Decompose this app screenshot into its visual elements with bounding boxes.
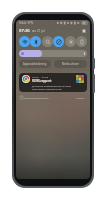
staticText: Wissen [76,96,85,99]
staticText: Je kunt de hoeveelheid van je dosis [32,84,72,87]
staticText: laten weten wanneer je de [32,87,62,90]
staticText: RIVM-rapport [32,79,52,83]
staticText: Odido VPN [19,21,33,25]
button[interactable]: Meldingsinstellingen [19,95,50,100]
staticText: NU.nl · 07:25 [32,75,49,78]
button[interactable]: Bluetooth [30,36,41,47]
button[interactable]: Battery saver [76,36,87,47]
staticText: 07:26 [19,28,30,34]
button[interactable]: Settings [80,27,87,34]
button[interactable]: NU.nl · 07:25 [19,73,87,92]
button[interactable]: Media uitvoer [54,60,87,68]
staticText: Apparaatbediening [23,62,47,66]
staticText: wo 21 jul [32,29,45,33]
button[interactable]: Search [42,36,53,47]
button[interactable]: Do not disturb [53,36,64,47]
button[interactable]: Wi-Fi [19,36,30,47]
staticText: Media uitvoer [62,62,79,66]
button[interactable]: Apparaatbediening [19,60,51,68]
button[interactable]: Flashlight [65,36,76,47]
button[interactable] [19,50,87,57]
staticText: Meldingsinstellingen [24,96,49,99]
button[interactable]: Wissen [74,95,87,100]
